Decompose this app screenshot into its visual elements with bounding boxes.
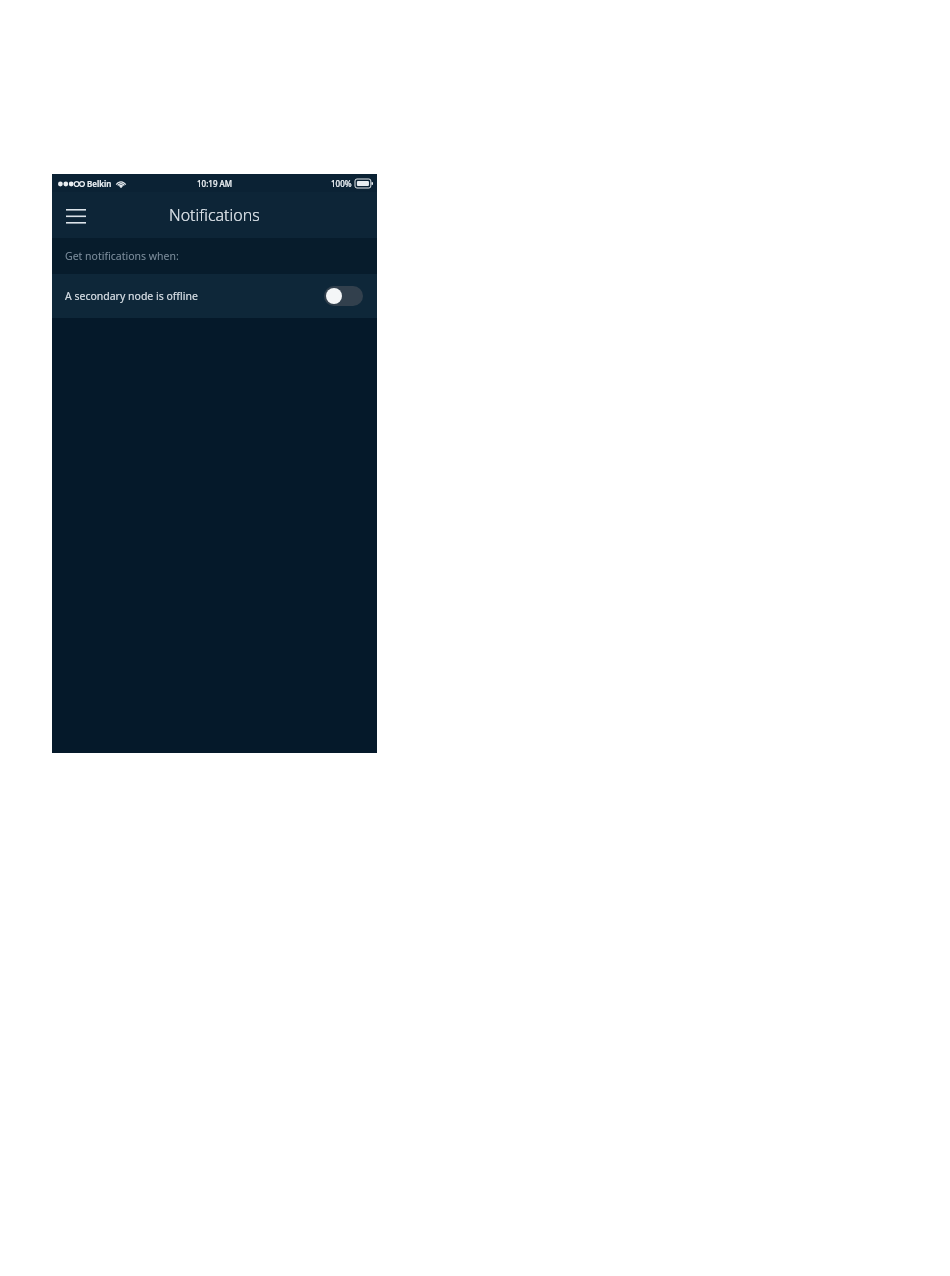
staticText: Get notifications when: [65, 249, 179, 263]
staticText: 100% [331, 178, 352, 189]
button[interactable]: Open navigation menu [60, 199, 92, 231]
staticText: Belkin [87, 178, 112, 189]
staticText: Notifications [169, 204, 260, 226]
staticText: A secondary node is offline [65, 289, 198, 303]
button[interactable]: A secondary node is offline toggle, off [324, 286, 363, 306]
button[interactable]: A secondary node is offline [52, 274, 377, 318]
staticText: 10:19 AM [197, 178, 233, 189]
